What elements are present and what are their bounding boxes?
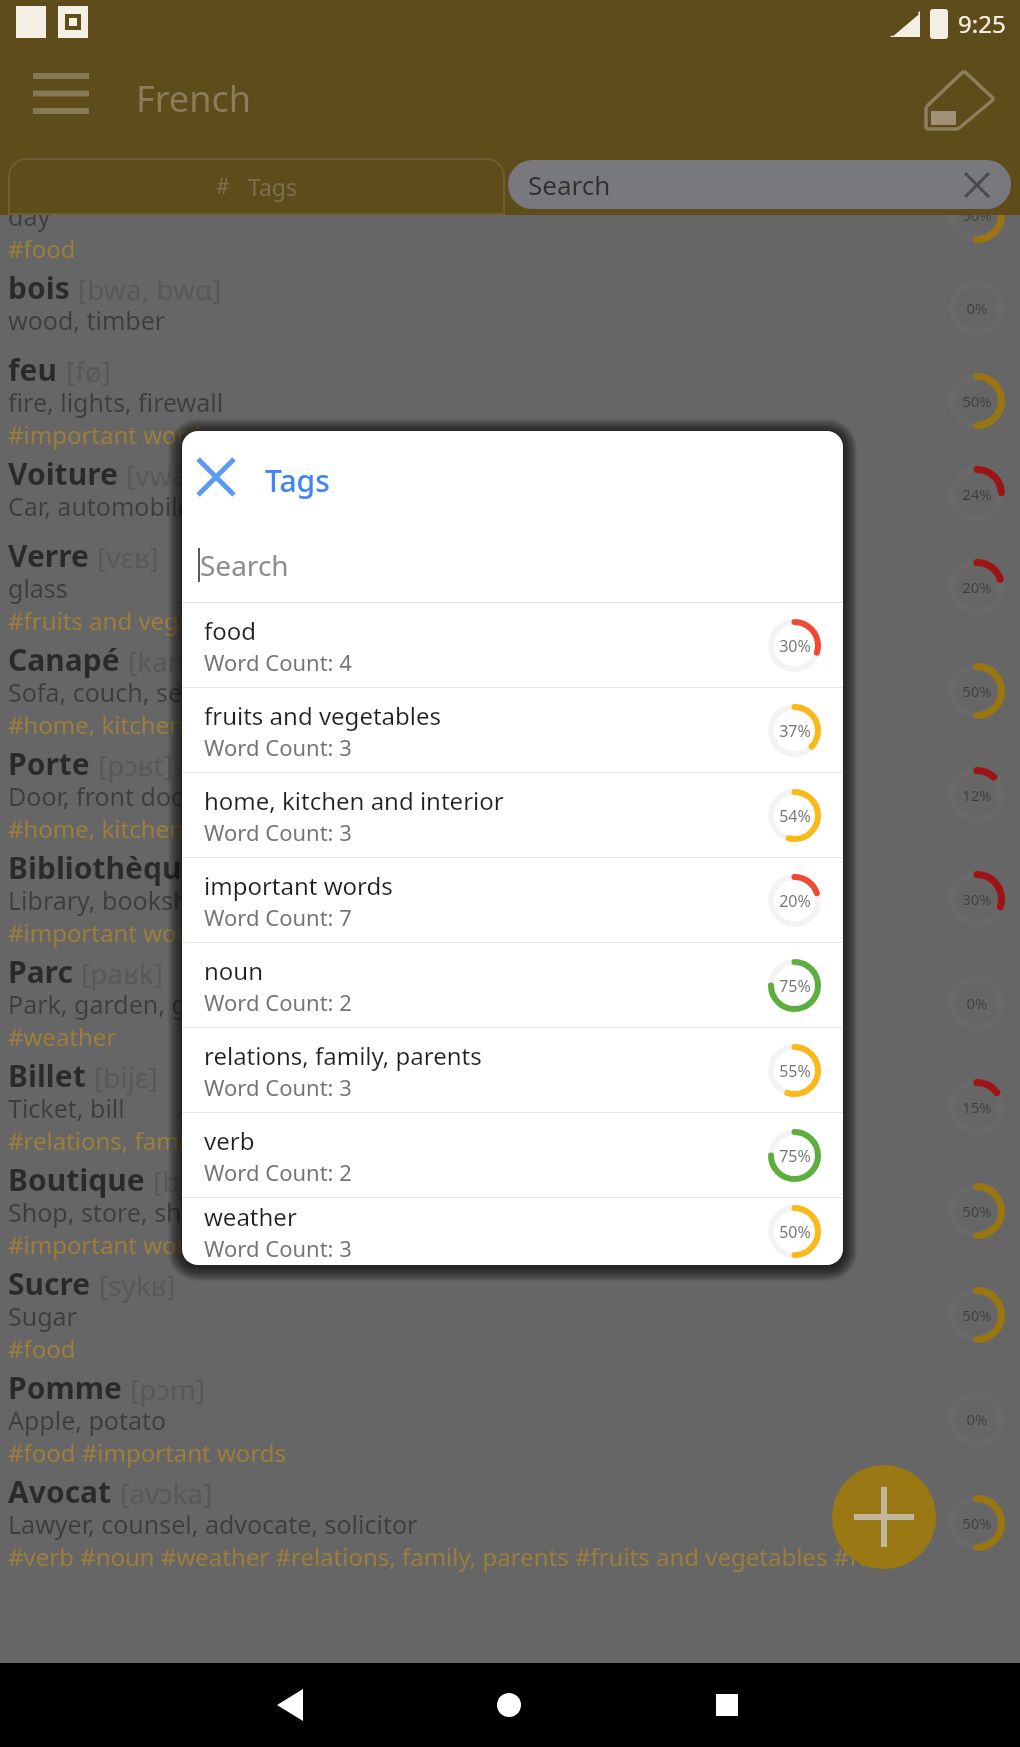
- button[interactable]: Verre: [0, 535, 1020, 639]
- staticText: 50%: [962, 215, 992, 225]
- staticText: [fø]: [66, 352, 111, 390]
- button[interactable]: Canapé: [0, 639, 1020, 743]
- button[interactable]: Close: [186, 447, 246, 507]
- staticText: Library, bookshop: [8, 883, 844, 917]
- button[interactable]: important words: [182, 858, 843, 942]
- button[interactable]: food: [182, 603, 843, 687]
- staticText: #fruits and vegetables: [8, 604, 906, 637]
- staticText: #weather: [8, 1020, 906, 1053]
- staticText: [biblijɔtɛk]: [208, 850, 342, 888]
- staticText: #important words: [8, 418, 906, 451]
- staticText: Car, automobile: [8, 489, 844, 523]
- staticText: Word Count: 7: [204, 902, 352, 932]
- staticText: Apple, potato: [8, 1403, 844, 1437]
- staticText: 12%: [962, 785, 992, 805]
- staticText: Porte: [8, 743, 90, 784]
- staticText: [pɔʁt]: [98, 746, 173, 784]
- staticText: Bibliothèque: [8, 847, 200, 888]
- staticText: Search: [528, 167, 611, 202]
- button[interactable]: Sucre: [0, 1263, 1020, 1367]
- staticText: 50%: [962, 391, 992, 411]
- staticText: #: [216, 172, 230, 201]
- button[interactable]: Boutique: [0, 1159, 1020, 1263]
- button[interactable]: feu: [0, 349, 1020, 453]
- staticText: Word Count: 3: [204, 817, 352, 847]
- button[interactable]: #: [8, 158, 505, 215]
- staticText: Word Count: 2: [204, 1157, 352, 1187]
- staticText: Sofa, couch, settee: [8, 675, 844, 709]
- staticText: glass: [8, 571, 844, 605]
- staticText: important words: [204, 869, 393, 902]
- staticText: wood, timber: [8, 303, 844, 337]
- staticText: 55%: [779, 1060, 811, 1082]
- staticText: 50%: [962, 1305, 992, 1325]
- staticText: 30%: [779, 635, 811, 657]
- staticText: #home, kitchen and interior: [8, 812, 906, 845]
- staticText: noun: [204, 954, 264, 987]
- staticText: 75%: [779, 1145, 811, 1167]
- staticText: Tags: [248, 171, 298, 202]
- other: Clear search: [965, 173, 989, 197]
- staticText: [kanape]: [128, 642, 244, 680]
- staticText: #food #important words: [8, 1436, 906, 1469]
- button[interactable]: verb: [182, 1113, 843, 1197]
- button[interactable]: fruits and vegetables: [182, 688, 843, 772]
- staticText: Voiture: [8, 453, 118, 494]
- staticText: [paʁk]: [81, 954, 163, 992]
- staticText: Park, garden, grounds: [8, 987, 844, 1021]
- button[interactable]: Parc: [0, 951, 1020, 1055]
- staticText: Word Count: 4: [204, 647, 352, 677]
- staticText: Word Count: 3: [204, 1072, 352, 1102]
- button[interactable]: Pomme: [0, 1367, 1020, 1471]
- staticText: 0%: [966, 1409, 988, 1429]
- button[interactable]: bois: [0, 267, 1020, 349]
- button[interactable]: home, kitchen and interior: [182, 773, 843, 857]
- staticText: 20%: [962, 577, 992, 597]
- staticText: Tags: [265, 460, 330, 501]
- staticText: verb: [204, 1124, 255, 1157]
- staticText: #home, kitchen and interior: [8, 708, 906, 741]
- button[interactable]: Search: [508, 160, 1011, 209]
- staticText: 50%: [962, 1513, 992, 1533]
- button[interactable]: jour: [0, 215, 1020, 267]
- staticText: 0%: [966, 993, 988, 1013]
- staticText: [sykʁ]: [99, 1266, 176, 1304]
- staticText: [bijɛ]: [94, 1058, 158, 1096]
- staticText: #food: [8, 1332, 906, 1365]
- staticText: 9:25: [958, 7, 1006, 40]
- button[interactable]: Avocat: [0, 1471, 1020, 1575]
- staticText: Door, front door: [8, 779, 844, 813]
- staticText: weather: [204, 1200, 297, 1233]
- button[interactable]: relations, family, parents: [182, 1028, 843, 1112]
- staticText: #important words: [8, 916, 906, 949]
- button[interactable]: Add word: [832, 1465, 936, 1569]
- staticText: Word Count: 3: [204, 732, 352, 762]
- staticText: [vwatyʁ]: [126, 456, 237, 494]
- staticText: bois: [8, 267, 70, 308]
- button[interactable]: Bibliothèque: [0, 847, 1020, 951]
- staticText: Sucre: [8, 1263, 91, 1304]
- button[interactable]: weather: [182, 1198, 843, 1265]
- button[interactable]: Billet: [0, 1055, 1020, 1159]
- staticText: Lawyer, counsel, advocate, solicitor: [8, 1507, 844, 1541]
- staticText: Verre: [8, 535, 89, 576]
- staticText: #food: [8, 232, 906, 265]
- button[interactable]: Porte: [0, 743, 1020, 847]
- button[interactable]: Practice: [910, 51, 1006, 147]
- staticText: 20%: [779, 890, 811, 912]
- button[interactable]: noun: [182, 943, 843, 1027]
- staticText: feu: [8, 349, 58, 390]
- staticText: Search: [200, 546, 289, 584]
- button[interactable]: Menu: [20, 52, 102, 134]
- staticText: Pomme: [8, 1367, 122, 1408]
- staticText: 37%: [779, 720, 811, 742]
- staticText: Sugar: [8, 1299, 844, 1333]
- staticText: food: [204, 614, 257, 647]
- button[interactable]: Search: [182, 527, 843, 602]
- staticText: 54%: [779, 805, 811, 827]
- staticText: [bwa, bwɑ]: [78, 270, 222, 308]
- button[interactable]: Voiture: [0, 453, 1020, 535]
- staticText: 50%: [962, 681, 992, 701]
- staticText: #verb #noun #weather #relations, family,…: [8, 1540, 906, 1573]
- staticText: 75%: [779, 975, 811, 997]
